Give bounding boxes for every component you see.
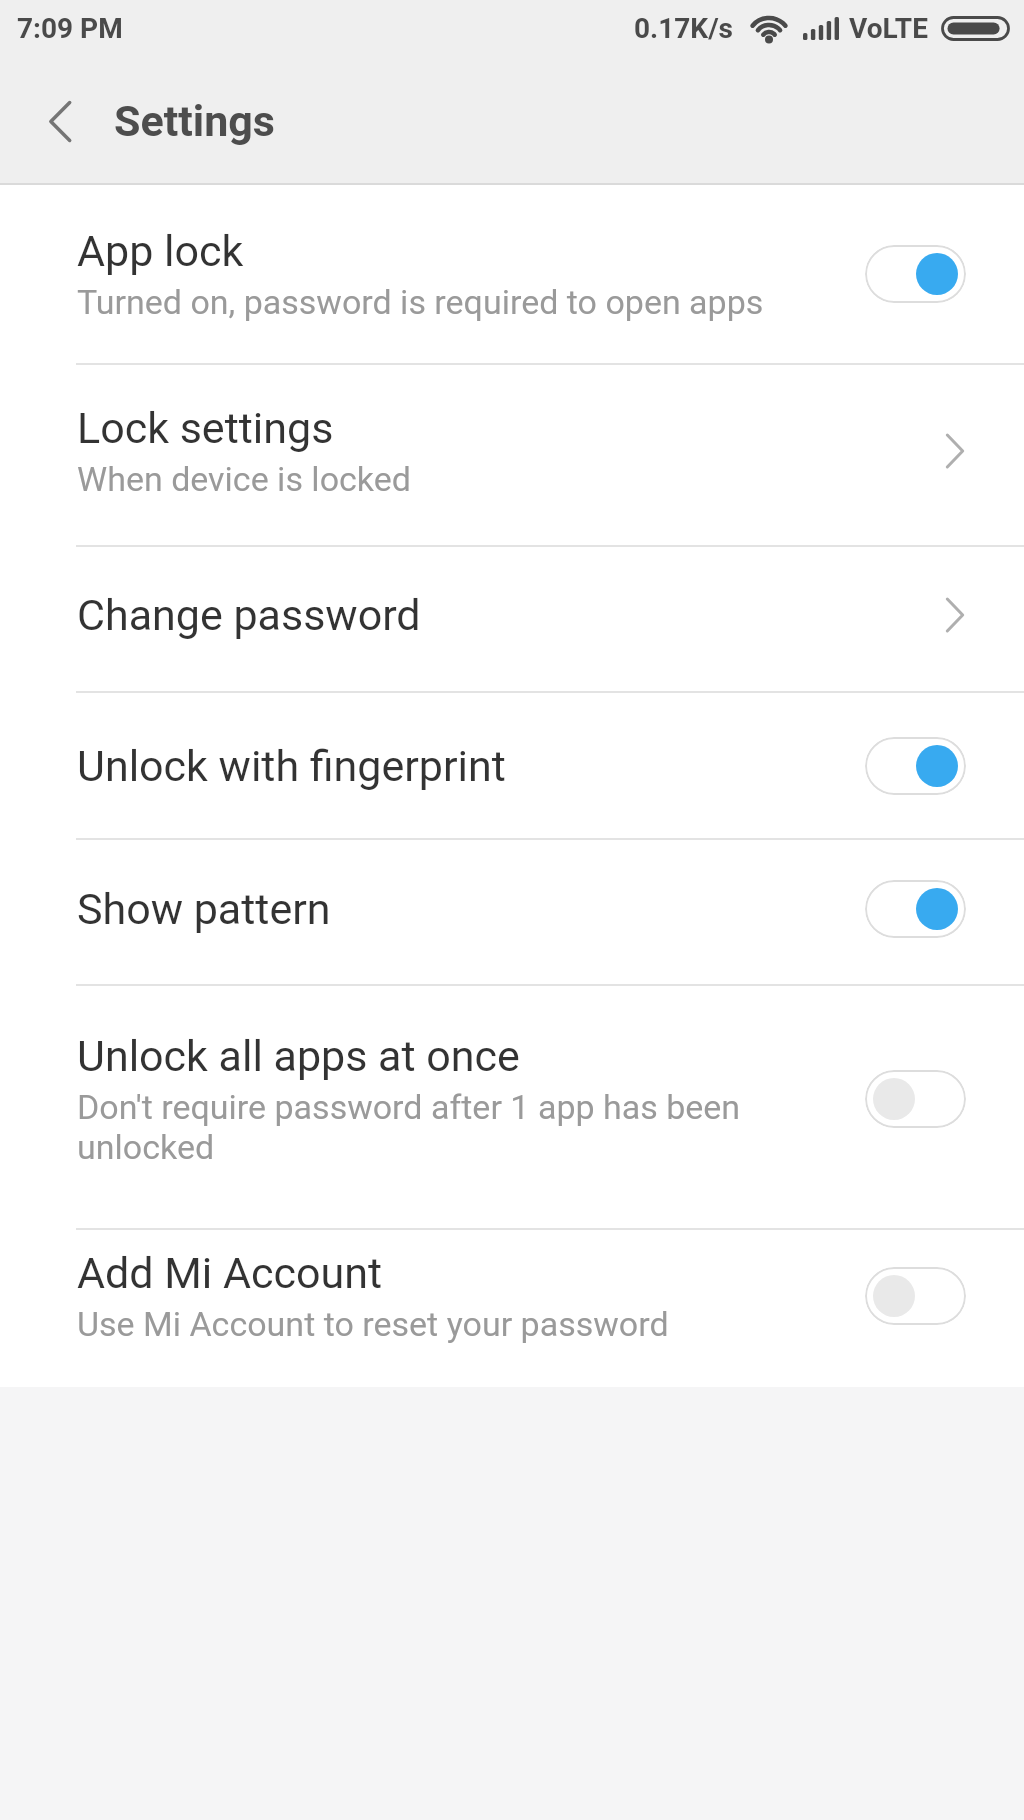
staticText: Settings <box>114 96 275 146</box>
button[interactable]: Unlock with fingerprint <box>0 693 1024 838</box>
staticText: App lock <box>77 226 244 276</box>
staticText: 7:09 PM <box>17 12 123 45</box>
button[interactable]: Unlock all apps at once <box>0 986 1024 1228</box>
staticText: Change password <box>77 590 421 640</box>
staticText: Unlock with fingerprint <box>77 741 506 791</box>
button[interactable]: App lock <box>0 185 1024 363</box>
button[interactable] <box>865 1070 966 1128</box>
staticText: Unlock all apps at once <box>77 1031 520 1081</box>
button[interactable]: Add Mi Account <box>0 1230 1024 1387</box>
button[interactable] <box>865 1267 966 1325</box>
button[interactable]: Change password <box>0 547 1024 691</box>
button[interactable] <box>37 98 83 144</box>
button[interactable] <box>865 737 966 795</box>
staticText: 0.17K/s <box>634 12 734 45</box>
staticText: Show pattern <box>77 884 331 934</box>
staticText: Turned on, password is required to open … <box>77 282 764 322</box>
staticText: Lock settings <box>77 403 334 453</box>
button[interactable] <box>865 880 966 938</box>
staticText: Add Mi Account <box>77 1248 382 1298</box>
staticText: Use Mi Account to reset your password <box>77 1304 669 1344</box>
staticText: Don't require password after 1 app has b… <box>77 1087 741 1127</box>
button[interactable]: Lock settings <box>0 365 1024 545</box>
staticText: unlocked <box>77 1127 215 1167</box>
staticText: VoLTE <box>849 12 928 45</box>
button[interactable]: Show pattern <box>0 840 1024 984</box>
staticText: When device is locked <box>77 459 411 499</box>
button[interactable] <box>865 245 966 303</box>
